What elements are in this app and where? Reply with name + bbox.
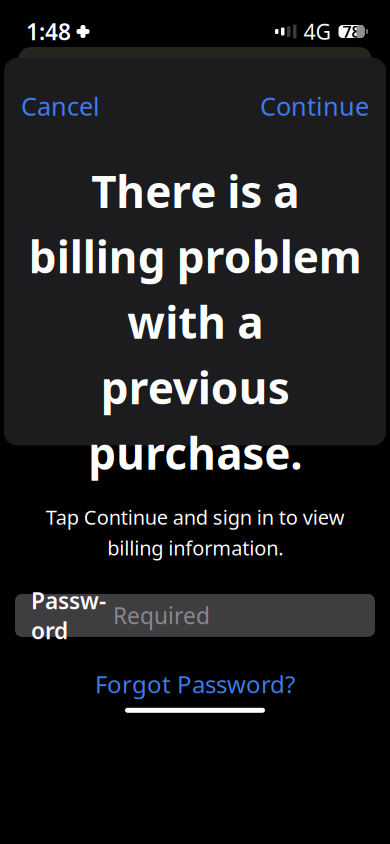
staticText: Tap Continue and sign in to view billing… [45, 504, 344, 561]
staticText: Password [31, 585, 106, 645]
staticText: There is a billing problem with a previo… [28, 162, 361, 482]
staticText: Forgot Password? [95, 668, 295, 700]
button[interactable]: Cancel [4, 78, 117, 134]
staticText: Required [113, 600, 210, 630]
button[interactable]: Continue [243, 78, 386, 134]
button[interactable]: Password [15, 594, 375, 637]
staticText: 4G [303, 17, 331, 46]
staticText: 78 [342, 21, 360, 42]
staticText: 1:48 [26, 16, 71, 46]
button[interactable]: Forgot Password? [75, 660, 315, 708]
staticText: Continue [260, 89, 369, 123]
staticText: Cancel [21, 89, 100, 123]
